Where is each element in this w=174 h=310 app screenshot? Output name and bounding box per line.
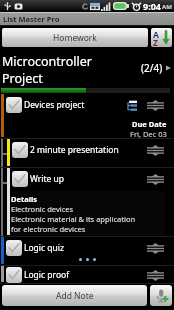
staticText: Details [11, 194, 37, 204]
other: Reorder [147, 269, 164, 282]
staticText: Logic quiz [24, 242, 147, 254]
staticText: Fri, Dec 03 [130, 129, 167, 139]
staticText: Devices project [24, 99, 126, 111]
staticText: Electronic material & its application [11, 214, 136, 224]
staticText: Add Note [56, 290, 94, 302]
button[interactable]: Devices project [0, 94, 174, 139]
staticText: Electronic devices [11, 204, 74, 214]
other: Subtasks [126, 100, 137, 111]
staticText: Project [2, 70, 43, 87]
staticText: 2 minute presentation [30, 144, 147, 156]
other: Reorder [147, 242, 164, 255]
staticText: Z [153, 37, 158, 47]
staticText: A [153, 29, 159, 41]
button[interactable]: 2 minute presentation [0, 139, 174, 168]
staticText: Logic proof [24, 269, 147, 281]
staticText: 9:04 [143, 0, 161, 12]
button[interactable]: Add Note [2, 285, 147, 306]
staticText: Homework [53, 32, 97, 44]
button[interactable]: Sort A to Z [151, 28, 172, 47]
button[interactable]: Add by voice [150, 285, 172, 306]
staticText: Microcontroller [2, 53, 92, 70]
staticText: Write up [30, 173, 147, 185]
button[interactable]: Write up [0, 168, 174, 237]
button[interactable]: Logic proof [0, 266, 174, 284]
staticText: List Master Pro [3, 14, 60, 24]
button[interactable]: Homework [2, 28, 148, 47]
other: Reorder [147, 144, 164, 157]
button[interactable]: Logic quiz [0, 237, 174, 266]
staticText: AM [162, 3, 172, 11]
staticText: Due Date [132, 119, 167, 129]
other: Reorder [147, 173, 164, 186]
staticText: for electronic devices [11, 224, 86, 234]
other: Reorder [147, 99, 164, 112]
button[interactable]: Microcontroller [0, 50, 174, 94]
staticText: (2/4) [141, 61, 163, 75]
